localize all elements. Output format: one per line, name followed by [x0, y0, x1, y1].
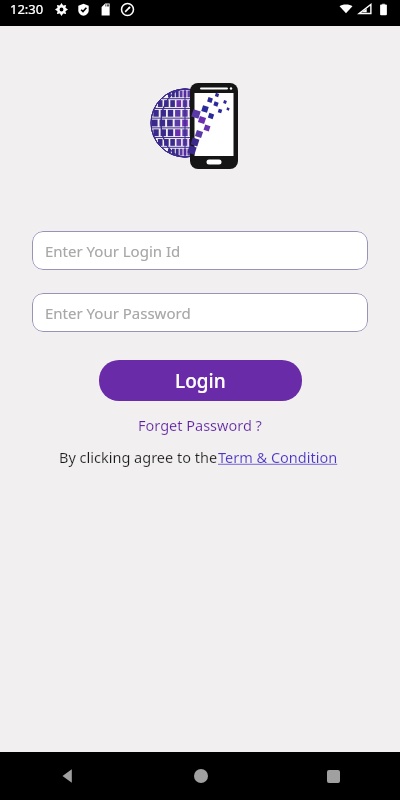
button[interactable]: Login — [99, 360, 302, 401]
staticText: Enter Your Password — [45, 303, 191, 323]
staticText: By clicking agree to the — [59, 447, 218, 467]
button[interactable]: Recent apps — [267, 752, 400, 800]
staticText: Forget Password ? — [138, 415, 262, 435]
staticText: Term & Condition — [218, 447, 341, 467]
button[interactable]: Back — [0, 752, 134, 800]
button[interactable]: Forget Password ? — [132, 413, 268, 437]
button[interactable]: Term & Condition — [218, 447, 341, 467]
other: App logo — [150, 82, 250, 176]
staticText: 12:30 — [10, 0, 44, 18]
button[interactable]: Home — [134, 752, 267, 800]
button[interactable]: Enter Your Password — [32, 293, 368, 332]
button[interactable]: Enter Your Login Id — [32, 231, 368, 270]
staticText: Enter Your Login Id — [45, 241, 181, 261]
staticText: Login — [175, 368, 226, 394]
